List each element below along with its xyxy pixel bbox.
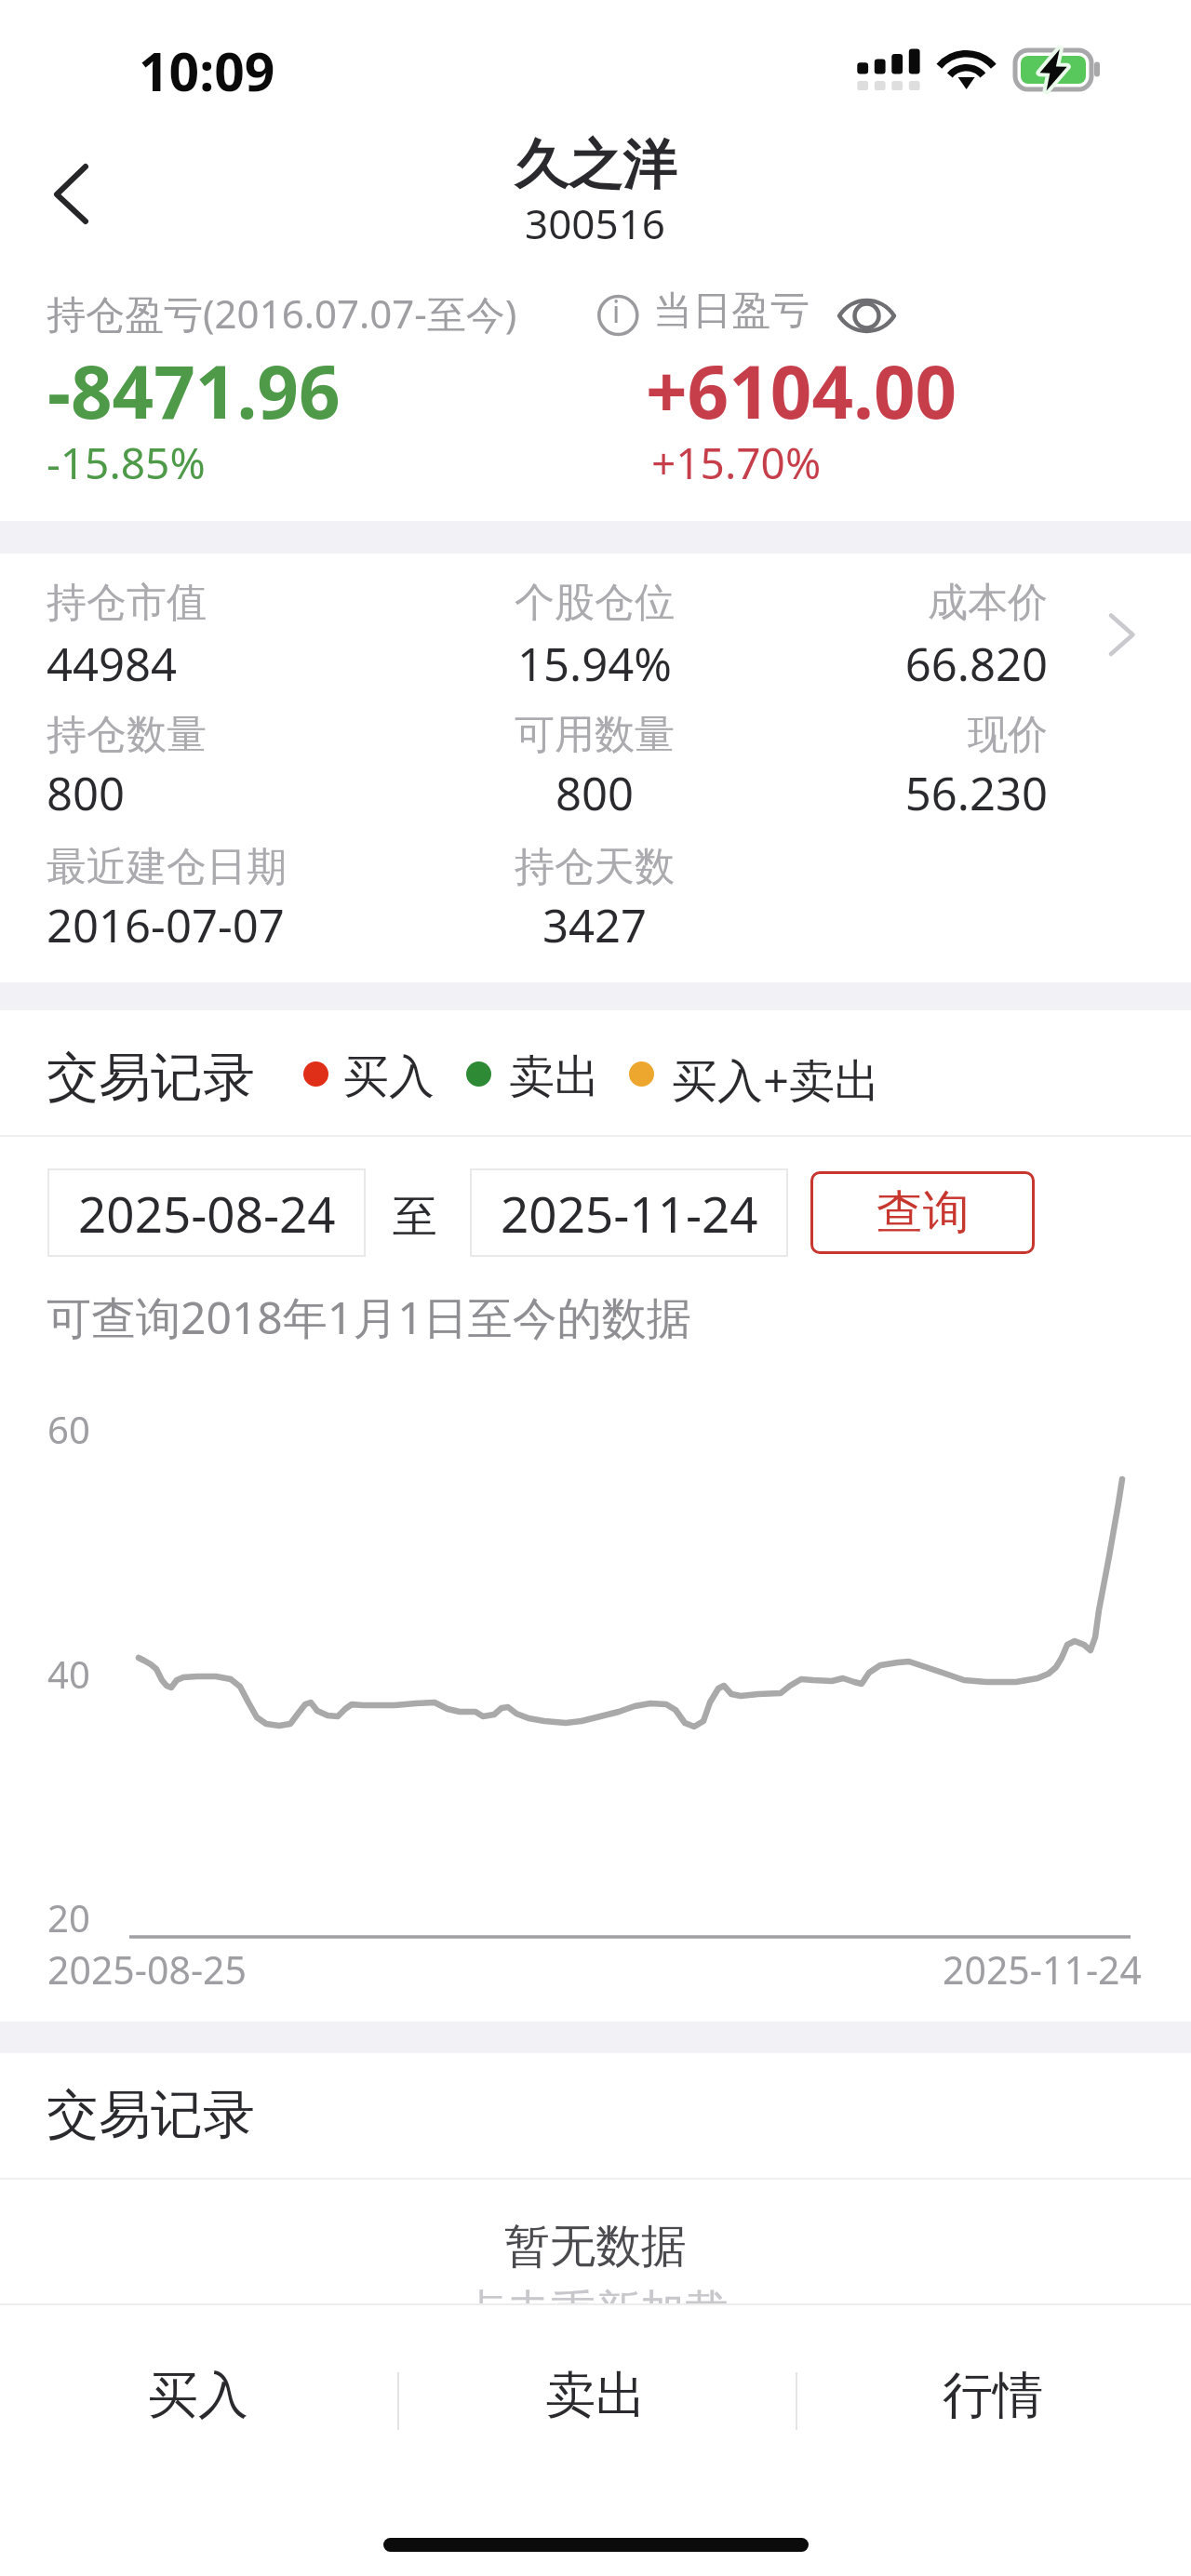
staticText: 买入 <box>343 1048 435 1106</box>
staticText: 66.820 <box>722 633 1048 695</box>
staticText: 3427 <box>455 894 734 956</box>
staticText: 40 <box>47 1648 90 1699</box>
staticText: 现价 <box>722 710 1048 760</box>
staticText: 暂无数据 <box>504 2218 687 2276</box>
staticText: -15.85% <box>47 434 206 492</box>
staticText: 300516 <box>525 195 666 251</box>
staticText: 20 <box>47 1892 90 1942</box>
button[interactable]: 买入 <box>0 2316 396 2475</box>
button[interactable]: 行情 <box>794 2316 1191 2475</box>
staticText: 持仓天数 <box>455 842 734 892</box>
button[interactable]: 2025-11-24 <box>470 1168 788 1257</box>
staticText: 当日盈亏 <box>653 287 810 336</box>
staticText: +15.70% <box>651 434 822 492</box>
staticText: 56.230 <box>722 762 1048 824</box>
button[interactable] <box>0 554 1191 982</box>
staticText: 800 <box>47 762 126 824</box>
staticText: 2025-11-24 <box>501 1180 758 1247</box>
button[interactable]: 查询 <box>810 1171 1035 1254</box>
staticText: 久之洋 <box>515 131 676 199</box>
staticText: 2016-07-07 <box>47 894 285 956</box>
staticText: 2025-08-24 <box>78 1180 336 1247</box>
button[interactable]: 显示/隐藏金额 <box>832 290 903 342</box>
staticText: 行情 <box>943 2364 1043 2427</box>
staticText: 卖出 <box>509 1048 600 1106</box>
staticText: 卖出 <box>545 2364 646 2427</box>
staticText: 可用数量 <box>455 710 734 760</box>
staticText: 10:09 <box>139 34 275 107</box>
staticText: 至 <box>393 1189 437 1245</box>
staticText: 持仓数量 <box>47 710 207 760</box>
staticText: 2025-11-24 <box>814 1943 1142 1995</box>
button[interactable]: 今日盈亏说明 <box>594 291 642 340</box>
staticText: 成本价 <box>722 578 1048 628</box>
staticText: 买入 <box>148 2364 248 2427</box>
button[interactable]: 卖出 <box>396 2316 794 2475</box>
staticText: 交易记录 <box>47 2082 255 2148</box>
staticText: 可查询2018年1月1日至今的数据 <box>47 1287 691 1348</box>
staticText: 查询 <box>877 1183 970 1242</box>
staticText: 持仓盈亏(2016.07.07-至今) <box>47 287 517 340</box>
staticText: 44984 <box>47 633 178 695</box>
staticText: 个股仓位 <box>455 578 734 628</box>
staticText: 点击重新加载 <box>462 2284 729 2340</box>
staticText: 买入+卖出 <box>672 1048 881 1111</box>
staticText: i <box>612 291 621 332</box>
staticText: 15.94% <box>455 633 734 695</box>
staticText: 交易记录 <box>47 1045 255 1111</box>
staticText: 最近建仓日期 <box>47 842 287 892</box>
button[interactable]: Back <box>24 143 117 246</box>
staticText: 800 <box>455 762 734 824</box>
button[interactable]: 暂无数据 <box>0 2177 1191 2303</box>
staticText: 持仓市值 <box>47 578 207 628</box>
staticText: 2025-08-25 <box>47 1943 248 1995</box>
staticText: 60 <box>47 1404 90 1454</box>
staticText: -8471.96 <box>47 341 341 440</box>
button[interactable]: 2025-08-24 <box>47 1168 366 1257</box>
staticText: +6104.00 <box>646 341 957 440</box>
